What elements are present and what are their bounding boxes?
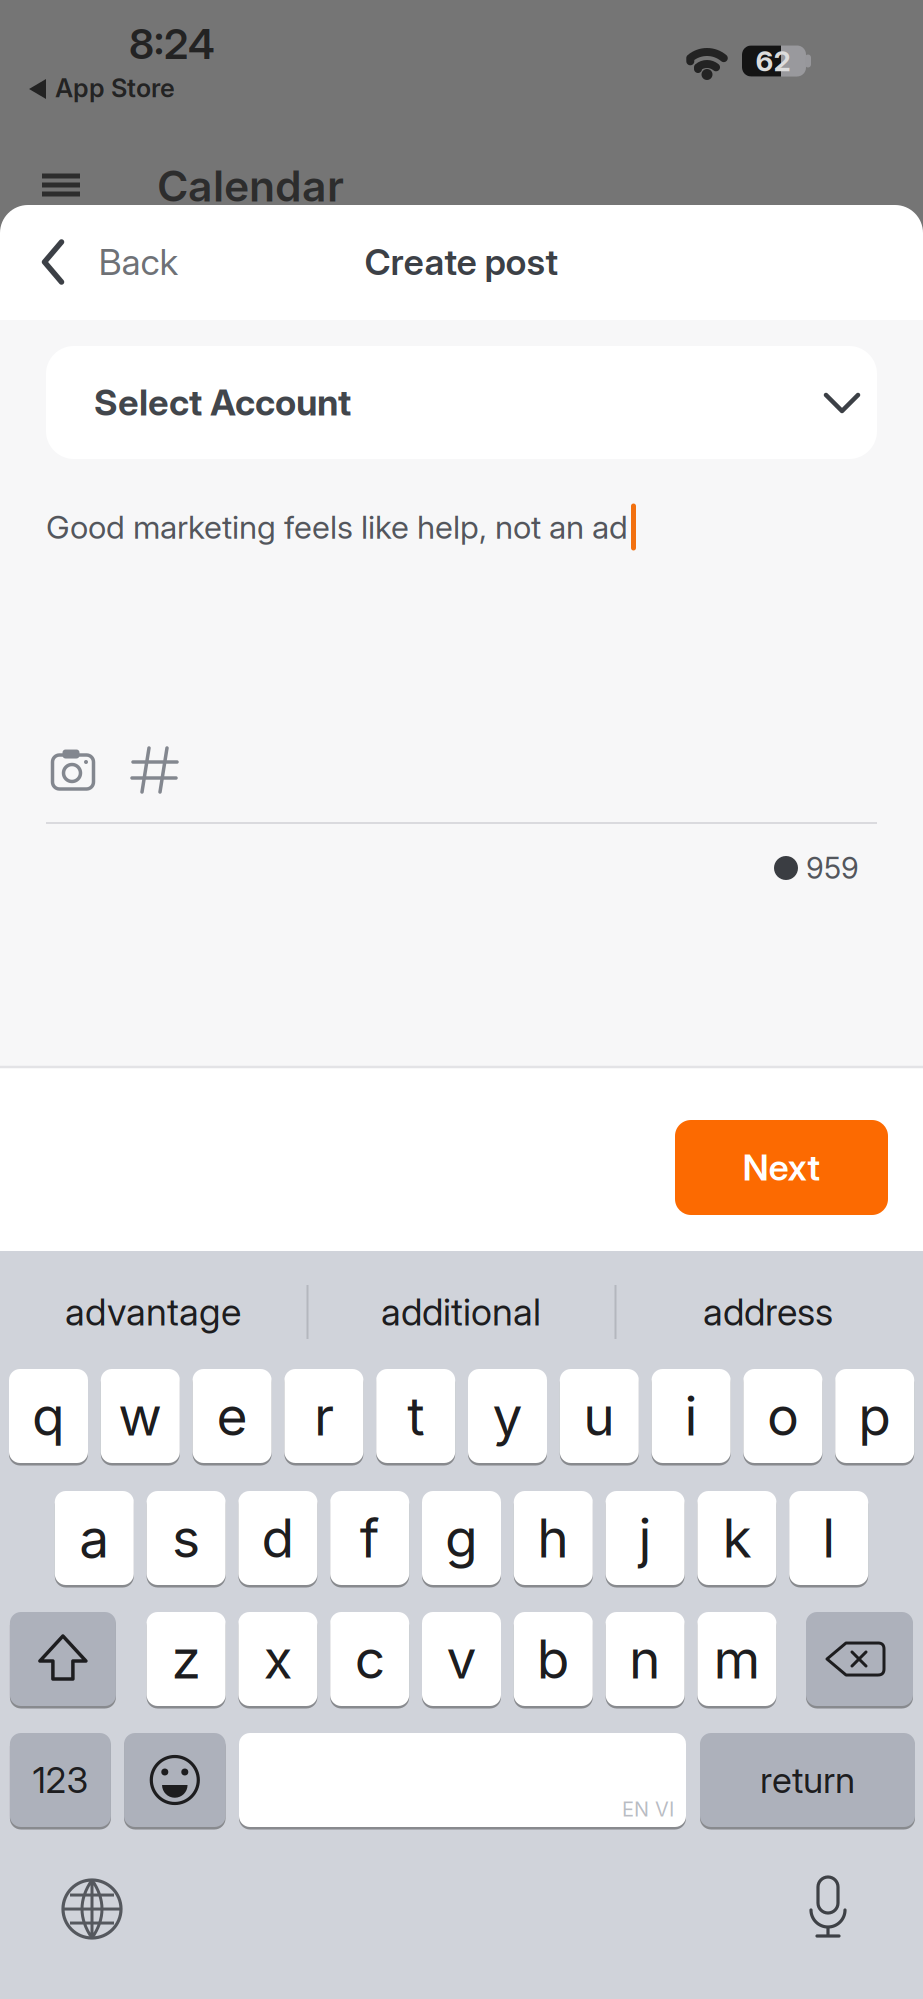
button[interactable]: Next (675, 1120, 888, 1215)
button[interactable]: Back (41, 217, 178, 307)
staticText: y (492, 1384, 522, 1447)
staticText: address (703, 1290, 833, 1334)
button[interactable]: w (101, 1367, 180, 1464)
staticText: Create post (364, 241, 558, 283)
button[interactable]: o (743, 1367, 822, 1464)
staticText: App Store (55, 73, 175, 103)
staticText: m (713, 1627, 760, 1690)
staticText: g (445, 1506, 478, 1569)
button[interactable]: h (514, 1489, 593, 1586)
button[interactable]: q (9, 1367, 88, 1464)
button[interactable]: r (284, 1367, 363, 1464)
staticText: k (722, 1506, 751, 1569)
button[interactable]: i (652, 1367, 731, 1464)
staticText: Select Account (94, 381, 351, 424)
button[interactable]: m (697, 1610, 776, 1707)
staticText: 123 (32, 1759, 88, 1801)
button[interactable]: address (623, 1262, 913, 1362)
staticText: i (685, 1384, 698, 1447)
button[interactable]: Dictate (798, 1874, 858, 1944)
staticText: v (446, 1627, 476, 1690)
button[interactable]: b (514, 1610, 593, 1707)
button[interactable]: Next keyboard (57, 1874, 127, 1944)
button[interactable]: f (330, 1489, 409, 1586)
staticText: a (79, 1506, 109, 1569)
button[interactable]: e (193, 1367, 272, 1464)
staticText: Good marketing feels like help, not an a… (46, 508, 628, 546)
staticText: Back (98, 241, 178, 283)
staticText: o (767, 1384, 799, 1447)
staticText: x (263, 1627, 292, 1690)
button[interactable]: return (700, 1731, 915, 1828)
staticText: e (217, 1384, 248, 1447)
staticText: j (639, 1506, 652, 1569)
button[interactable]: k (697, 1489, 776, 1586)
staticText: Calendar (157, 161, 344, 211)
button[interactable]: j (606, 1489, 685, 1586)
staticText: advantage (65, 1290, 241, 1334)
staticText: f (360, 1506, 380, 1569)
staticText: u (583, 1384, 615, 1447)
button[interactable]: Space (239, 1731, 686, 1828)
button[interactable]: Delete (806, 1610, 913, 1707)
button[interactable]: g (422, 1489, 501, 1586)
button[interactable]: 123 (10, 1731, 111, 1828)
button[interactable]: l (789, 1489, 868, 1586)
button[interactable]: advantage (8, 1262, 298, 1362)
button[interactable]: Emoji (124, 1731, 226, 1828)
button[interactable]: y (468, 1367, 547, 1464)
staticText: 62 (755, 44, 790, 77)
button[interactable]: u (560, 1367, 639, 1464)
staticText: s (172, 1506, 200, 1569)
button[interactable]: additional (316, 1262, 606, 1362)
button[interactable]: Add hashtag (132, 747, 178, 793)
staticText: z (172, 1627, 201, 1690)
staticText: EN VI (622, 1797, 674, 1821)
button[interactable]: Select Account (46, 346, 877, 459)
button[interactable]: v (422, 1610, 501, 1707)
staticText: t (407, 1384, 424, 1447)
staticText: return (760, 1759, 855, 1801)
button[interactable]: d (238, 1489, 317, 1586)
button[interactable]: s (147, 1489, 226, 1586)
staticText: h (537, 1506, 569, 1569)
button[interactable]: n (606, 1610, 685, 1707)
staticText: r (314, 1384, 334, 1447)
staticText: l (822, 1506, 835, 1569)
button[interactable]: z (147, 1610, 226, 1707)
staticText: b (537, 1627, 570, 1690)
button[interactable]: a (55, 1489, 134, 1586)
staticText: additional (381, 1290, 541, 1334)
button[interactable]: x (238, 1610, 317, 1707)
button[interactable]: t (376, 1367, 455, 1464)
button[interactable]: Add photo (49, 745, 97, 793)
button[interactable]: c (330, 1610, 409, 1707)
staticText: q (32, 1384, 65, 1447)
button[interactable]: Shift (10, 1610, 116, 1707)
staticText: 959 (806, 851, 859, 885)
staticText: 8:24 (129, 20, 215, 68)
button[interactable]: p (835, 1367, 914, 1464)
staticText: p (858, 1384, 891, 1447)
staticText: w (118, 1384, 162, 1447)
staticText: c (355, 1627, 385, 1690)
staticText: n (629, 1627, 661, 1690)
staticText: d (261, 1506, 294, 1569)
staticText: Next (742, 1146, 820, 1189)
